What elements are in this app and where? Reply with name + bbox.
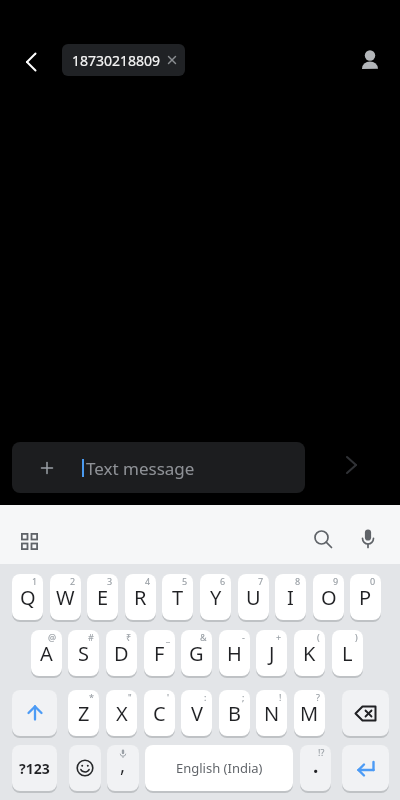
staticText: P <box>359 584 372 611</box>
button[interactable]: M <box>294 690 325 736</box>
staticText: N <box>264 700 280 727</box>
staticText: - <box>242 631 245 643</box>
staticText: !? <box>318 746 325 758</box>
staticText: Text message <box>86 457 195 480</box>
staticText: E <box>97 584 109 611</box>
button[interactable] <box>351 522 385 556</box>
button[interactable]: P <box>350 574 381 620</box>
staticText: English (India) <box>176 759 263 777</box>
staticText: S <box>78 640 89 667</box>
button[interactable]: E <box>87 574 118 620</box>
staticText: F <box>154 640 165 667</box>
staticText: * <box>89 691 94 703</box>
button[interactable]: Text message <box>12 442 305 493</box>
button[interactable]: T <box>162 574 193 620</box>
staticText: ! <box>279 691 282 703</box>
button[interactable]: B <box>219 690 250 736</box>
button[interactable]: N <box>256 690 287 736</box>
staticText: 9 <box>333 575 339 587</box>
staticText: # <box>88 631 94 643</box>
button[interactable]: 18730218809 <box>62 44 185 76</box>
staticText: V <box>191 700 203 727</box>
staticText: O <box>321 584 337 611</box>
button[interactable]: Y <box>200 574 231 620</box>
button[interactable] <box>342 690 389 736</box>
staticText: J <box>269 640 275 667</box>
staticText: A <box>40 640 53 667</box>
staticText: Q <box>20 584 36 611</box>
button[interactable] <box>12 524 46 558</box>
button[interactable]: J <box>256 630 287 676</box>
staticText: 18730218809 <box>72 51 161 70</box>
staticText: M <box>300 700 319 727</box>
staticText: : <box>204 691 207 703</box>
staticText: ' <box>167 691 170 703</box>
staticText: ?123 <box>19 759 50 778</box>
staticText: R <box>134 584 147 611</box>
button[interactable] <box>69 745 101 791</box>
staticText: C <box>153 700 166 727</box>
staticText: 1 <box>32 575 38 587</box>
staticText: 6 <box>220 575 226 587</box>
staticText: 8 <box>295 575 301 587</box>
button[interactable]: Z <box>68 690 99 736</box>
staticText: D <box>114 640 129 667</box>
staticText: Y <box>210 584 222 611</box>
staticText: U <box>246 584 261 611</box>
staticText: T <box>172 584 184 611</box>
staticText: 4 <box>145 575 151 587</box>
staticText: _ <box>166 631 170 643</box>
button[interactable]: I <box>275 574 306 620</box>
button[interactable] <box>336 450 366 480</box>
button[interactable]: C <box>144 690 175 736</box>
staticText: 5 <box>182 575 188 587</box>
button[interactable]: X <box>106 690 137 736</box>
staticText: 3 <box>107 575 113 587</box>
button[interactable]: . <box>300 745 331 791</box>
button[interactable] <box>12 690 57 736</box>
staticText: . <box>313 753 319 779</box>
staticText: Z <box>78 700 90 727</box>
staticText: ₹ <box>126 631 132 643</box>
staticText: H <box>227 640 242 667</box>
button[interactable]: W <box>50 574 81 620</box>
button[interactable] <box>306 522 340 556</box>
button[interactable]: R <box>125 574 156 620</box>
staticText: X <box>116 700 128 727</box>
staticText: @ <box>48 631 57 643</box>
button[interactable] <box>342 745 389 791</box>
button[interactable]: G <box>181 630 212 676</box>
staticText: & <box>200 631 207 643</box>
button[interactable]: K <box>294 630 325 676</box>
button[interactable]: D <box>106 630 137 676</box>
staticText: K <box>303 640 316 667</box>
staticText: I <box>287 584 294 611</box>
staticText: ; <box>242 691 245 703</box>
button[interactable] <box>16 46 48 78</box>
staticText: ) <box>355 631 358 643</box>
button[interactable]: A <box>31 630 62 676</box>
staticText: W <box>56 584 75 611</box>
button[interactable]: Q <box>12 574 43 620</box>
staticText: ? <box>316 691 320 703</box>
button[interactable]: S <box>68 630 99 676</box>
staticText: G <box>189 640 204 667</box>
button[interactable]: U <box>238 574 269 620</box>
staticText: , <box>120 752 126 778</box>
staticText: 2 <box>70 575 76 587</box>
staticText: 0 <box>370 575 376 587</box>
staticText: " <box>128 691 132 703</box>
staticText: ( <box>317 631 320 643</box>
button[interactable]: ?123 <box>12 745 57 791</box>
button[interactable] <box>354 44 386 76</box>
button[interactable]: H <box>219 630 250 676</box>
button[interactable]: F <box>144 630 175 676</box>
staticText: 7 <box>258 575 264 587</box>
button[interactable]: O <box>313 574 344 620</box>
button[interactable]: English (India) <box>145 745 293 791</box>
staticText: L <box>342 640 353 667</box>
button[interactable]: , <box>107 745 139 791</box>
staticText: B <box>228 700 241 727</box>
button[interactable]: L <box>332 630 363 676</box>
button[interactable]: V <box>181 690 212 736</box>
